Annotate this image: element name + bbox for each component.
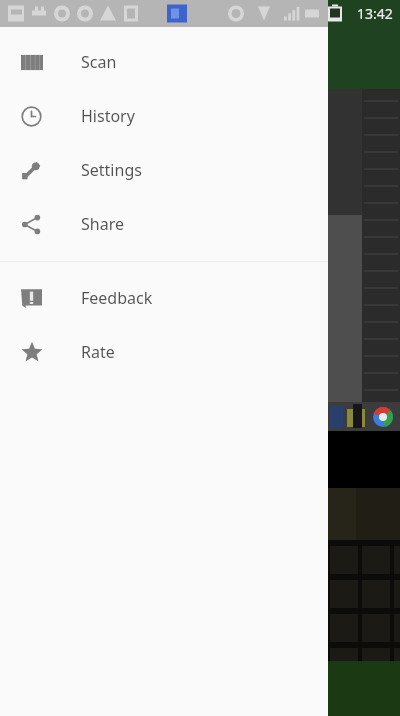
staticText: Feedback (81, 287, 153, 309)
button[interactable]: History (0, 89, 328, 143)
button[interactable]: Settings (0, 143, 328, 197)
staticText: 13:42 (357, 4, 393, 23)
button[interactable]: Feedback (0, 271, 328, 325)
button[interactable]: Rate (0, 325, 328, 379)
staticText: Settings (81, 159, 142, 181)
staticText: Rate (81, 341, 115, 363)
staticText: History (81, 105, 135, 127)
button[interactable]: Close navigation drawer (0, 0, 400, 716)
staticText: Share (81, 213, 124, 235)
staticText: Scan (81, 51, 117, 73)
button[interactable]: Share (0, 197, 328, 251)
button[interactable]: Scan (0, 35, 328, 89)
